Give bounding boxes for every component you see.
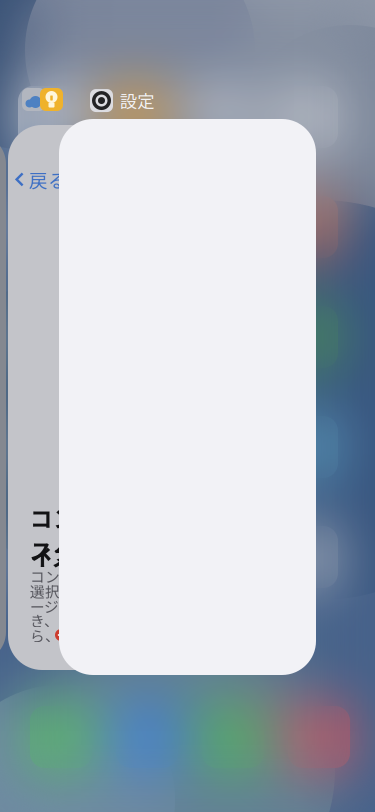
button[interactable]: 戻る <box>8 125 260 670</box>
staticText: 設定 <box>120 88 154 113</box>
button[interactable] <box>59 119 316 675</box>
staticText: き、「カスタマイズ」を選ぶと <box>30 609 238 631</box>
button[interactable]: ヒント <box>22 88 63 111</box>
staticText: コントロールセンターに表示する項目を <box>30 565 300 587</box>
staticText: 戻る <box>29 166 67 193</box>
staticText: コントロールセンターをカスタマ <box>30 501 306 567</box>
staticText: ら、 <box>30 624 60 646</box>
button[interactable]: 戻る <box>11 162 71 197</box>
button[interactable]: 設定 <box>90 88 154 113</box>
button[interactable]: 前のアプリ <box>0 134 6 662</box>
staticText: イズ <box>30 540 75 572</box>
staticText: ージッと押さえたままにしておき <box>30 595 251 617</box>
staticText: 選択できます。コントロールセンターを <box>30 580 298 602</box>
